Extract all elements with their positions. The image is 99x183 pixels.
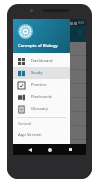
- button[interactable]: Recents: [66, 145, 75, 154]
- staticText: Study: [31, 70, 43, 76]
- button[interactable]: Study: [13, 67, 70, 79]
- button[interactable]: Dashboard: [13, 55, 70, 67]
- button[interactable]: App Version: [13, 129, 70, 141]
- button[interactable]: More options: [77, 29, 83, 35]
- staticText: Practice: [31, 82, 47, 88]
- staticText: General: [18, 121, 32, 126]
- staticText: Flashcards: [31, 94, 52, 100]
- staticText: Concepts of Biology: [18, 43, 58, 49]
- button[interactable]: Glossary: [13, 103, 70, 115]
- staticText: Glossary: [31, 106, 48, 112]
- button[interactable]: Practice: [13, 79, 70, 91]
- button[interactable]: Back: [25, 145, 34, 154]
- button[interactable]: Flashcards: [13, 91, 70, 103]
- button[interactable]: Upgrade: [13, 141, 70, 153]
- staticText: Chapters: [18, 35, 35, 40]
- button[interactable]: Home: [45, 145, 54, 154]
- staticText: 9:13: [78, 21, 84, 25]
- staticText: App Version: [18, 132, 42, 138]
- staticText: Upgrade: [18, 144, 36, 150]
- staticText: Dashboard: [31, 58, 53, 64]
